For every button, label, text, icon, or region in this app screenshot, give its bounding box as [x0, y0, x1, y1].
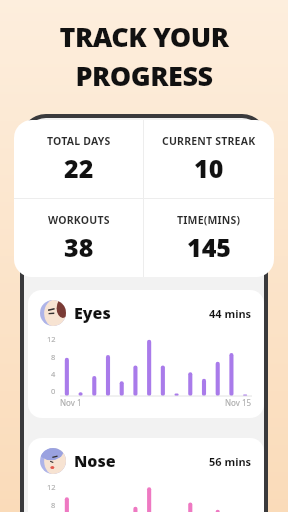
button[interactable]: TOTAL DAYS [14, 120, 143, 198]
staticText: TIME(MINS) [177, 213, 241, 227]
other: Nose [40, 448, 66, 474]
staticText: 38 [64, 230, 94, 264]
staticText: TOTAL DAYS [47, 134, 111, 148]
staticText: PROGRESS [75, 57, 213, 94]
staticText: 10 [194, 151, 224, 185]
staticText: CURRENT STREAK [162, 134, 256, 148]
staticText: 145 [187, 230, 231, 264]
button[interactable]: CURRENT STREAK [144, 120, 274, 198]
staticText: 12 [47, 482, 56, 492]
button[interactable]: WORKOUTS [14, 199, 143, 277]
staticText: 0 [51, 386, 56, 396]
staticText: WORKOUTS [48, 213, 110, 227]
button[interactable]: TIME(MINS) [144, 199, 274, 277]
staticText: 22 [64, 151, 94, 185]
staticText: 56 mins [209, 454, 252, 469]
button[interactable]: TOTAL DAYS [14, 120, 274, 277]
staticText: 8 [51, 500, 56, 510]
staticText: TRACK YOUR [59, 18, 229, 55]
other: Eyes [40, 300, 66, 326]
staticText: 4 [51, 369, 56, 379]
staticText: Nov 1 [60, 397, 82, 408]
staticText: 8 [51, 352, 56, 362]
staticText: 44 mins [209, 306, 252, 321]
staticText: Eyes [74, 302, 111, 324]
staticText: Nov 15 [225, 397, 252, 408]
staticText: 12 [47, 334, 56, 344]
staticText: Nose [74, 450, 116, 472]
button[interactable]: Nose [28, 438, 264, 512]
button[interactable]: Eyes [28, 290, 264, 418]
